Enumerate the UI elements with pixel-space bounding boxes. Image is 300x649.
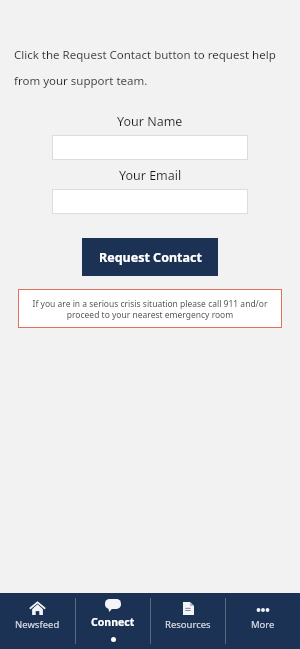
button[interactable]: Your Email — [52, 189, 248, 214]
staticText: Click the Request Contact button to requ… — [14, 47, 288, 89]
button[interactable]: Newsfeed — [0, 593, 75, 649]
staticText: Request Contact — [99, 249, 202, 266]
button[interactable]: Connect — [76, 593, 150, 649]
button[interactable]: Your Name — [52, 135, 248, 160]
staticText: Your Email — [119, 167, 182, 184]
button[interactable]: Resources — [151, 593, 225, 649]
staticText: Connect — [91, 615, 135, 629]
staticText: Resources — [165, 618, 211, 631]
button[interactable]: Request Contact — [82, 238, 218, 276]
staticText: Your Name — [117, 113, 183, 130]
staticText: Newsfeed — [15, 618, 60, 631]
staticText: More — [251, 618, 275, 631]
staticText: If you are in a serious crisis situation… — [32, 298, 268, 320]
button[interactable]: More — [226, 593, 300, 649]
